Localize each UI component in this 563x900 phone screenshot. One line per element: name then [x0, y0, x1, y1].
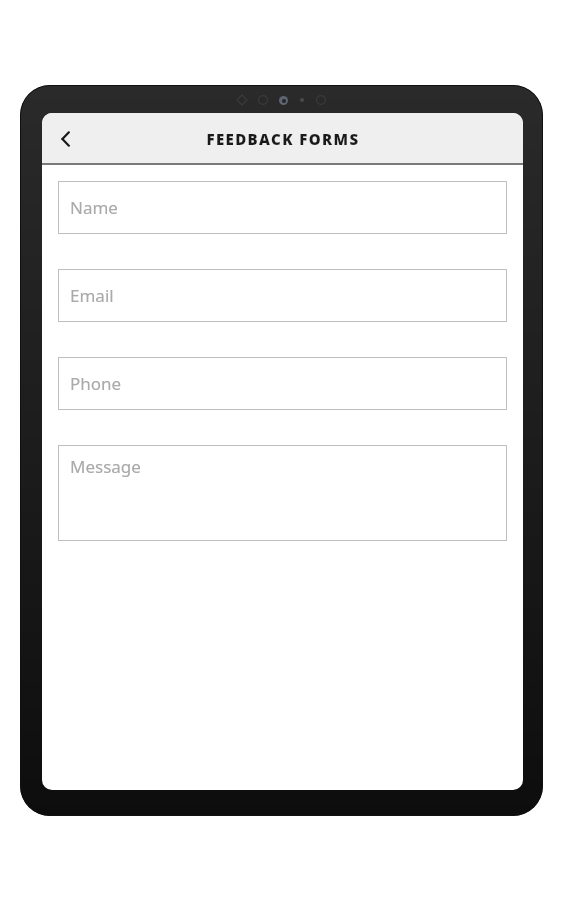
- button[interactable]: Message: [58, 445, 507, 541]
- staticText: Name: [70, 196, 118, 219]
- button[interactable]: Back: [42, 115, 90, 163]
- button[interactable]: Name: [58, 181, 507, 234]
- button[interactable]: Email: [58, 269, 507, 322]
- staticText: Phone: [70, 372, 122, 395]
- staticText: Message: [70, 455, 141, 478]
- staticText: Email: [70, 284, 114, 307]
- staticText: FEEDBACK FORMS: [206, 129, 360, 149]
- button[interactable]: Phone: [58, 357, 507, 410]
